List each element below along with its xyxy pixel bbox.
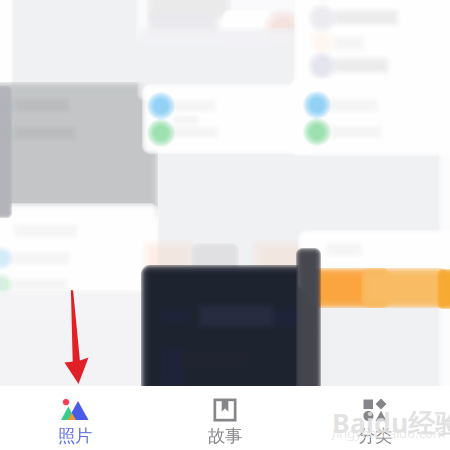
staticText: 照片 xyxy=(58,425,92,447)
staticText: Baidu经验 xyxy=(332,405,450,441)
button[interactable]: 分类 xyxy=(300,386,450,450)
staticText: Jingyan.baidu.com xyxy=(332,424,445,442)
staticText: 分类 xyxy=(358,425,392,447)
button[interactable]: 故事 xyxy=(150,386,300,450)
staticText: 故事 xyxy=(208,425,242,447)
button[interactable]: 照片 xyxy=(0,386,150,450)
